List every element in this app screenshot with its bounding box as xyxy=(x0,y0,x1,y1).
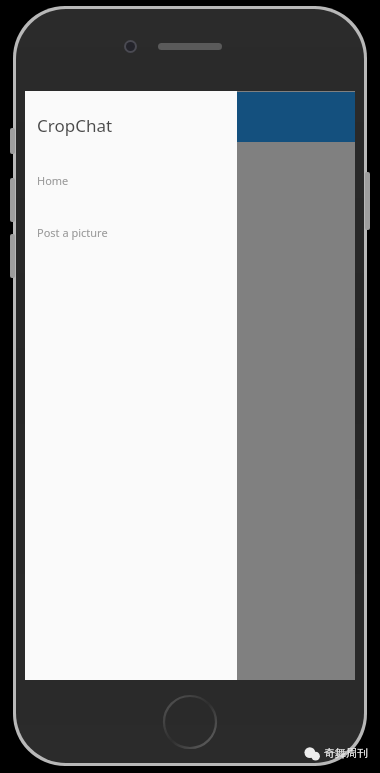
button[interactable]: CropChat xyxy=(25,105,237,145)
staticText: Post a picture xyxy=(37,225,108,240)
staticText: Home xyxy=(37,173,69,188)
staticText: 奇舞周刊 xyxy=(324,746,368,760)
other: Home button xyxy=(162,694,218,750)
button[interactable]: Post a picture xyxy=(25,219,237,245)
staticText: CropChat xyxy=(37,114,113,137)
button[interactable]: Home xyxy=(25,167,237,193)
